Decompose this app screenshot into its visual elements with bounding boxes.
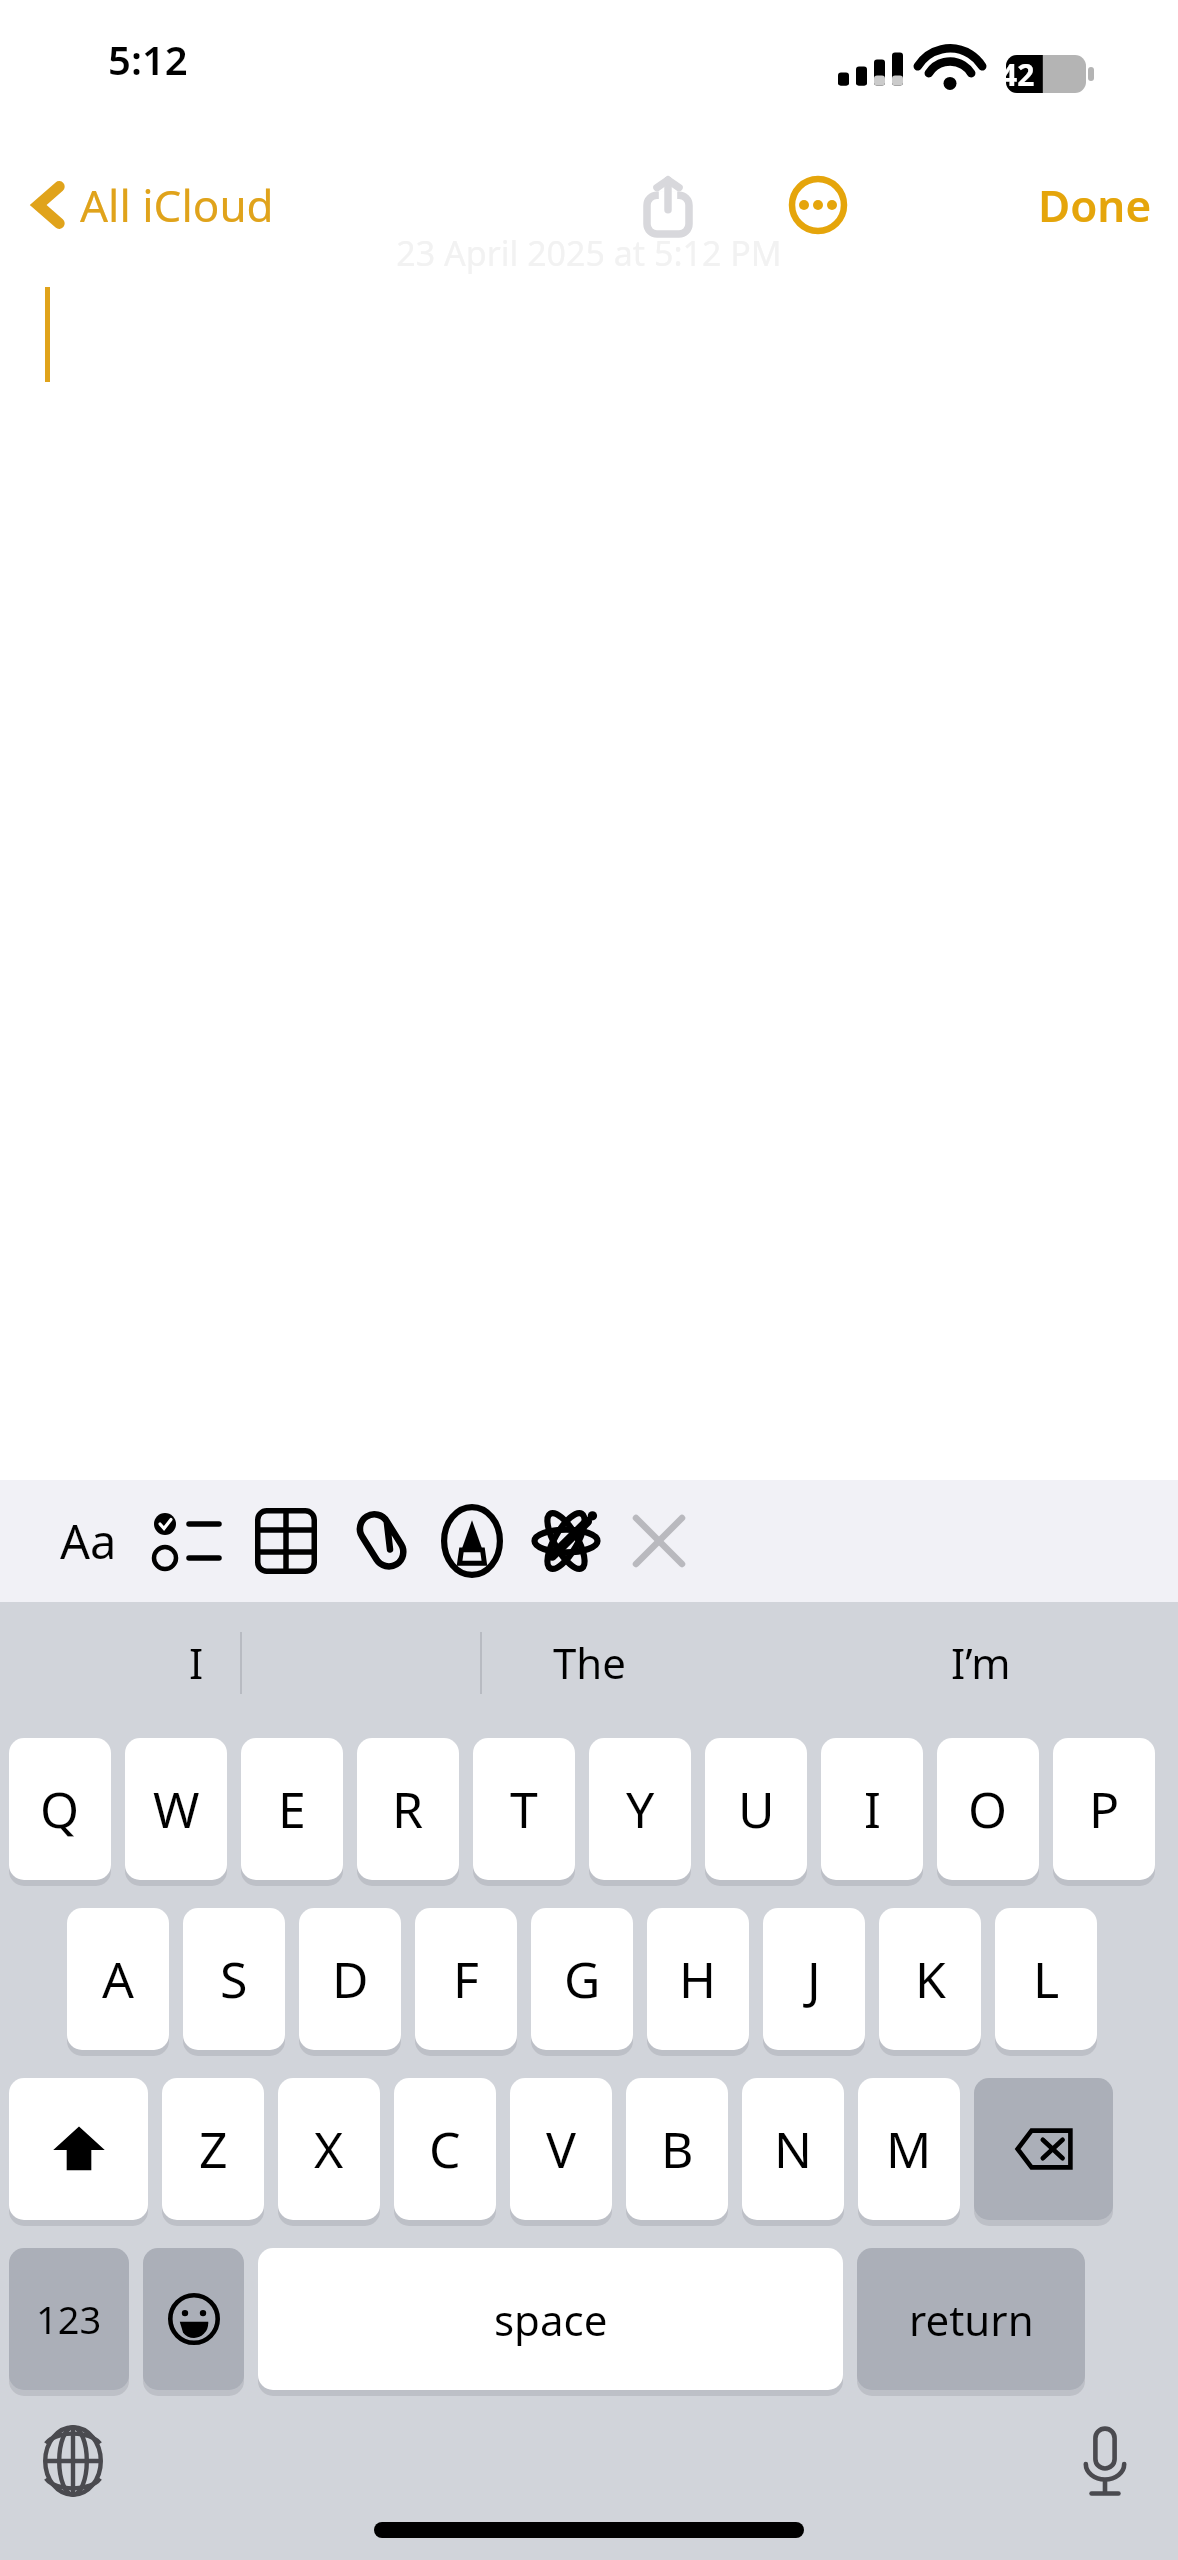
button[interactable]: W (125, 1738, 227, 1880)
button[interactable]: Handwriting (518, 1486, 614, 1596)
staticText: L (1033, 1945, 1060, 2013)
staticText: return (909, 2291, 1034, 2348)
button[interactable]: D (299, 1908, 401, 2050)
button[interactable]: Table (238, 1486, 334, 1596)
button[interactable]: U (705, 1738, 807, 1880)
staticText: N (774, 2115, 812, 2183)
button[interactable]: F (415, 1908, 517, 2050)
staticText: M (886, 2115, 932, 2183)
button[interactable]: Share (618, 160, 718, 250)
staticText: U (738, 1775, 775, 1843)
button[interactable]: Shift (9, 2078, 148, 2220)
button[interactable]: E (241, 1738, 343, 1880)
button[interactable]: G (531, 1908, 633, 2050)
button[interactable]: B (626, 2078, 728, 2220)
staticText: The (553, 1634, 626, 1691)
staticText: F (453, 1945, 479, 2013)
button[interactable]: return (857, 2248, 1085, 2390)
staticText: I (189, 1634, 204, 1691)
button[interactable]: M (858, 2078, 960, 2220)
staticText: I (864, 1775, 881, 1843)
button[interactable]: More (768, 160, 868, 250)
button[interactable]: Close (611, 1486, 707, 1596)
staticText: W (153, 1775, 200, 1843)
button[interactable]: Next keyboard (28, 2416, 118, 2506)
button[interactable]: J (763, 1908, 865, 2050)
button[interactable]: V (510, 2078, 612, 2220)
staticText: E (278, 1775, 306, 1843)
button[interactable]: Y (589, 1738, 691, 1880)
staticText: A (102, 1945, 134, 2013)
staticText: S (220, 1945, 248, 2013)
staticText: K (915, 1945, 946, 2013)
button[interactable]: S (183, 1908, 285, 2050)
button[interactable]: space (258, 2248, 843, 2390)
staticText: 42 (1000, 54, 1035, 95)
staticText: J (807, 1945, 821, 2013)
staticText: R (392, 1775, 424, 1843)
button[interactable]: R (357, 1738, 459, 1880)
staticText: Q (40, 1775, 80, 1843)
staticText: Z (199, 2115, 228, 2183)
button[interactable]: Done (1012, 160, 1178, 250)
staticText: 123 (36, 2293, 102, 2345)
button[interactable]: Backspace (974, 2078, 1113, 2220)
staticText: Done (1038, 175, 1152, 235)
button[interactable]: I (0, 1602, 392, 1722)
button[interactable]: L (995, 1908, 1097, 2050)
staticText: Aa (60, 1509, 117, 1573)
staticText: D (332, 1945, 369, 2013)
button[interactable]: 123 (9, 2248, 129, 2390)
button[interactable]: P (1053, 1738, 1155, 1880)
button[interactable]: I’m (785, 1602, 1177, 1722)
button[interactable]: Z (162, 2078, 264, 2220)
staticText: X (314, 2115, 344, 2183)
staticText: Y (626, 1775, 655, 1843)
button[interactable]: I (821, 1738, 923, 1880)
staticText: H (679, 1945, 717, 2013)
staticText: 5:12 (108, 32, 188, 86)
button[interactable]: Attach (334, 1486, 430, 1596)
staticText: C (429, 2115, 461, 2183)
staticText: All iCloud (80, 175, 274, 235)
button[interactable]: T (473, 1738, 575, 1880)
button[interactable]: Text format (40, 1486, 136, 1596)
staticText: B (661, 2115, 694, 2183)
staticText: O (968, 1775, 1008, 1843)
staticText: 23 April 2025 at 5:12 PM (0, 230, 1178, 276)
button[interactable]: All iCloud (18, 160, 288, 250)
button[interactable]: X (278, 2078, 380, 2220)
button[interactable]: Emoji (143, 2248, 244, 2390)
button[interactable]: N (742, 2078, 844, 2220)
button[interactable]: Markup (424, 1486, 520, 1596)
button[interactable]: H (647, 1908, 749, 2050)
button[interactable]: Dictate (1060, 2416, 1150, 2506)
staticText: G (564, 1945, 601, 2013)
button[interactable]: O (937, 1738, 1039, 1880)
button[interactable]: Checklist (139, 1486, 235, 1596)
button[interactable]: The (393, 1602, 785, 1722)
staticText: space (494, 2291, 608, 2348)
staticText: P (1089, 1775, 1120, 1843)
button[interactable]: A (67, 1908, 169, 2050)
button[interactable]: K (879, 1908, 981, 2050)
button[interactable]: Q (9, 1738, 111, 1880)
staticText: V (546, 2115, 576, 2183)
button[interactable]: C (394, 2078, 496, 2220)
staticText: T (510, 1775, 538, 1843)
staticText: I’m (951, 1634, 1011, 1691)
